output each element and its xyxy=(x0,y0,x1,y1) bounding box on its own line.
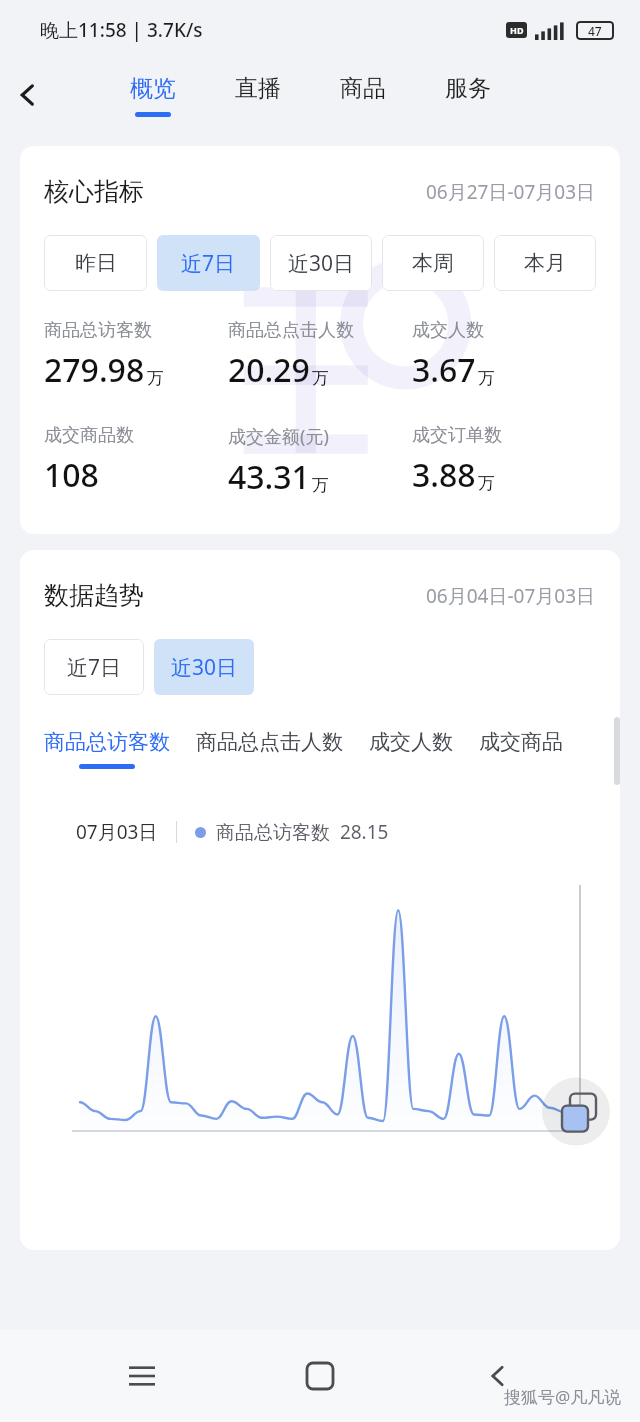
staticText: 成交商品 xyxy=(479,729,563,755)
staticText: 商品总访客数 xyxy=(44,729,170,755)
staticText: 3.88 xyxy=(412,453,476,497)
staticText: 成交金额(元) xyxy=(228,424,329,449)
button[interactable]: Recents xyxy=(106,1340,178,1412)
staticText: 万 xyxy=(312,368,329,389)
staticText: 47 xyxy=(588,23,602,39)
staticText: 万 xyxy=(312,475,329,496)
staticText: 43.31 xyxy=(228,455,310,499)
staticText: 搜狐号@凡凡说 xyxy=(504,1385,622,1408)
staticText: 07月03日 xyxy=(76,819,158,845)
button[interactable]: Back xyxy=(462,1340,534,1412)
staticText: 概览 xyxy=(130,74,176,103)
button[interactable]: Back xyxy=(0,67,56,123)
staticText: 成交订单数 xyxy=(412,424,502,447)
staticText: 20.29 xyxy=(228,348,310,392)
staticText: 昨日 xyxy=(75,250,117,276)
staticText: 商品总点击人数 xyxy=(228,319,354,342)
button[interactable]: Home xyxy=(284,1340,356,1412)
staticText: 本周 xyxy=(412,250,454,276)
staticText: 万 xyxy=(478,473,495,494)
staticText: 直播 xyxy=(235,74,281,103)
staticText: 本月 xyxy=(524,250,566,276)
staticText: 晚上11:58 | 3.7K/s xyxy=(40,17,203,43)
staticText: HD xyxy=(510,24,524,36)
staticText: 成交人数 xyxy=(369,729,453,755)
button[interactable]: 概览 xyxy=(100,60,205,130)
staticText: 279.98 xyxy=(44,348,145,392)
button[interactable]: 近7日 xyxy=(44,639,144,695)
staticText: 万 xyxy=(478,368,495,389)
button[interactable]: 本月 xyxy=(494,235,596,291)
button[interactable]: 成交人数 xyxy=(369,729,453,769)
staticText: 108 xyxy=(44,453,99,497)
staticText: 万 xyxy=(147,368,164,389)
staticText: 商品总访客数 28.15 xyxy=(216,819,389,845)
staticText: 商品 xyxy=(340,74,386,103)
button[interactable]: 昨日 xyxy=(44,235,147,291)
button[interactable]: 本周 xyxy=(382,235,484,291)
button[interactable]: 成交商品 xyxy=(479,729,563,769)
button[interactable]: 商品 xyxy=(310,60,415,130)
staticText: 3.67 xyxy=(412,348,476,392)
button[interactable]: 服务 xyxy=(415,60,520,130)
button[interactable]: 近30日 xyxy=(154,639,254,695)
button[interactable]: 直播 xyxy=(205,60,310,130)
staticText: 近7日 xyxy=(67,653,122,682)
staticText: 商品总点击人数 xyxy=(196,729,343,755)
staticText: 成交人数 xyxy=(412,319,484,342)
staticText: 成交商品数 xyxy=(44,424,134,447)
button[interactable]: 商品总访客数 xyxy=(44,729,170,769)
staticText: 数据趋势 xyxy=(44,580,144,611)
staticText: 06月27日-07月03日 xyxy=(426,179,596,205)
button[interactable]: 近30日 xyxy=(270,235,372,291)
staticText: 近7日 xyxy=(181,249,236,278)
button[interactable]: 商品总点击人数 xyxy=(196,729,343,769)
button[interactable]: 近7日 xyxy=(157,235,260,291)
staticText: 商品总访客数 xyxy=(44,319,152,342)
staticText: 06月04日-07月03日 xyxy=(426,583,596,609)
staticText: 核心指标 xyxy=(44,176,144,207)
staticText: 近30日 xyxy=(171,653,238,682)
staticText: 服务 xyxy=(445,74,491,103)
staticText: 近30日 xyxy=(288,249,355,278)
